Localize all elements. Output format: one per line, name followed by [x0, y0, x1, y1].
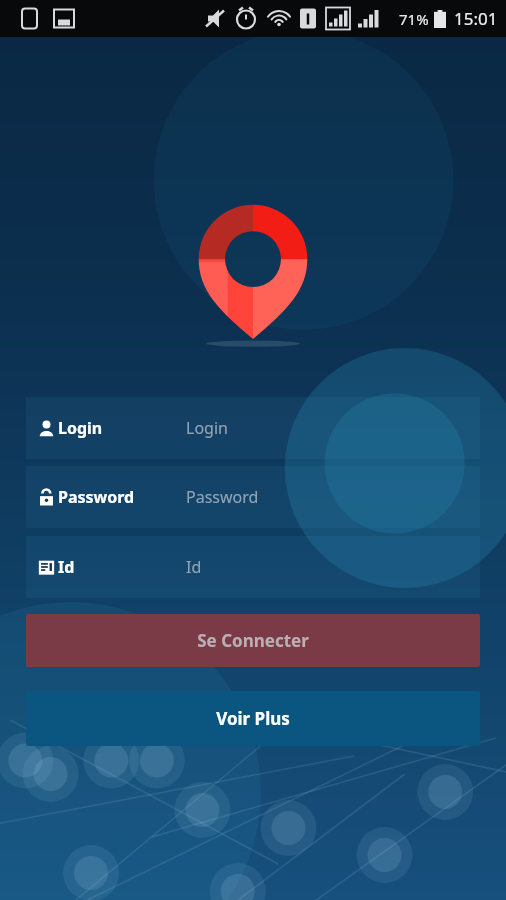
button[interactable]: Login — [26, 397, 480, 459]
staticText: Password — [58, 486, 135, 508]
staticText: Id — [186, 556, 202, 578]
button[interactable]: Password — [26, 466, 480, 528]
staticText: Voir Plus — [216, 707, 290, 730]
staticText: Login — [186, 417, 228, 439]
staticText: Id — [58, 556, 75, 578]
staticText: Password — [186, 486, 259, 508]
staticText: 15:01 — [454, 7, 498, 30]
button[interactable]: Id — [26, 536, 480, 598]
button[interactable]: Se Connecter — [26, 614, 480, 667]
staticText: 71% — [399, 9, 429, 29]
button[interactable]: Voir Plus — [26, 691, 480, 746]
staticText: Login — [58, 417, 103, 439]
staticText: Se Connecter — [197, 629, 309, 652]
